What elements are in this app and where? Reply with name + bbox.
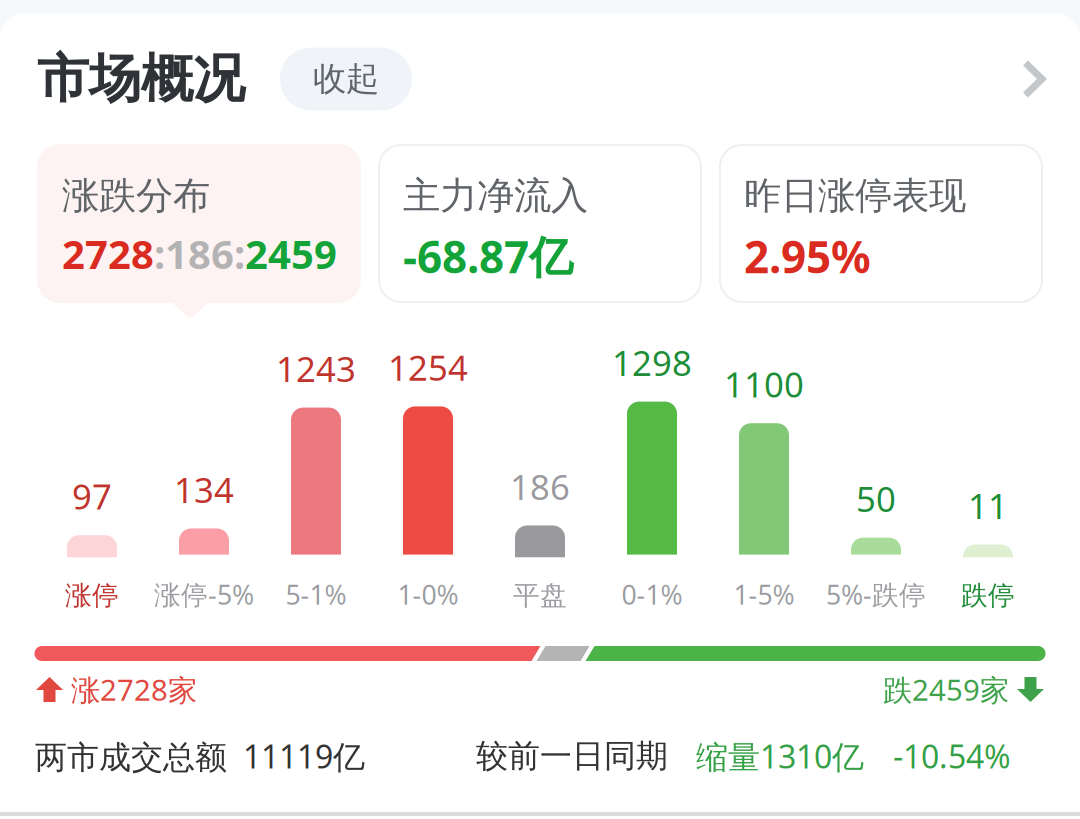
staticText: 涨跌分布 [62,173,210,219]
staticText: 涨停 [65,579,119,612]
button[interactable]: 涨跌分布 [38,145,360,302]
staticText: 11 [968,482,1008,528]
staticText: 97 [72,473,112,519]
staticText: -68.87亿 [403,227,573,285]
staticText: 昨日涨停表现 [744,173,966,219]
button[interactable]: 主力净流入 [379,145,701,302]
staticText: -10.54% [893,735,1011,777]
staticText: 186 [165,227,234,280]
staticText: : [234,227,245,280]
staticText: 50 [856,476,896,522]
staticText: 平盘 [513,579,567,612]
staticText: 5%-跌停 [826,577,926,612]
staticText: 两市成交总额 11119亿 [35,735,365,777]
staticText: 186 [510,463,570,509]
staticText: 主力净流入 [403,173,588,219]
staticText: 134 [174,466,234,512]
staticText: 2.95% [744,227,871,285]
staticText: 1298 [612,340,692,386]
staticText: 1243 [276,346,356,392]
staticText: 0-1% [621,577,682,612]
staticText: 1254 [388,344,468,390]
staticText: 1-5% [733,577,794,612]
staticText: 5-1% [285,577,346,612]
staticText: 跌2459家 [883,670,1009,709]
button[interactable]: 昨日涨停表现 [720,145,1042,302]
staticText: 收起 [313,58,379,99]
staticText: 跌停 [961,579,1015,612]
staticText: : [154,227,165,280]
staticText: 较前一日同期 [476,736,668,776]
staticText: 1-0% [397,577,458,612]
staticText: 缩量1310亿 [696,735,864,777]
staticText: 市场概况 [37,47,245,111]
staticText: 2728 [62,227,154,280]
button[interactable]: 市场概况 [0,13,1080,145]
staticText: 2459 [245,227,337,280]
staticText: 涨2728家 [71,670,197,709]
staticText: 涨停-5% [154,577,254,612]
staticText: 1100 [724,361,804,407]
